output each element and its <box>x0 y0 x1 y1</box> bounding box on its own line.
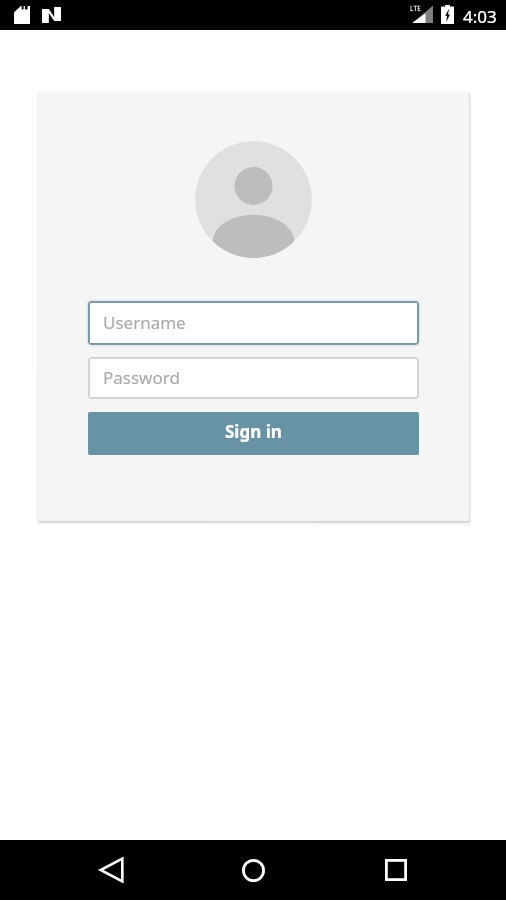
button[interactable]: Password <box>88 357 419 399</box>
staticText: Sign in <box>225 420 282 443</box>
button[interactable]: Recent apps <box>366 840 426 900</box>
button[interactable]: Home <box>223 840 283 900</box>
staticText: Password <box>103 366 180 389</box>
staticText: 4:03 <box>463 5 497 28</box>
staticText: Username <box>103 311 186 334</box>
button[interactable]: Back <box>81 840 141 900</box>
button[interactable]: Sign in <box>88 412 419 455</box>
button[interactable]: Username <box>88 301 419 345</box>
